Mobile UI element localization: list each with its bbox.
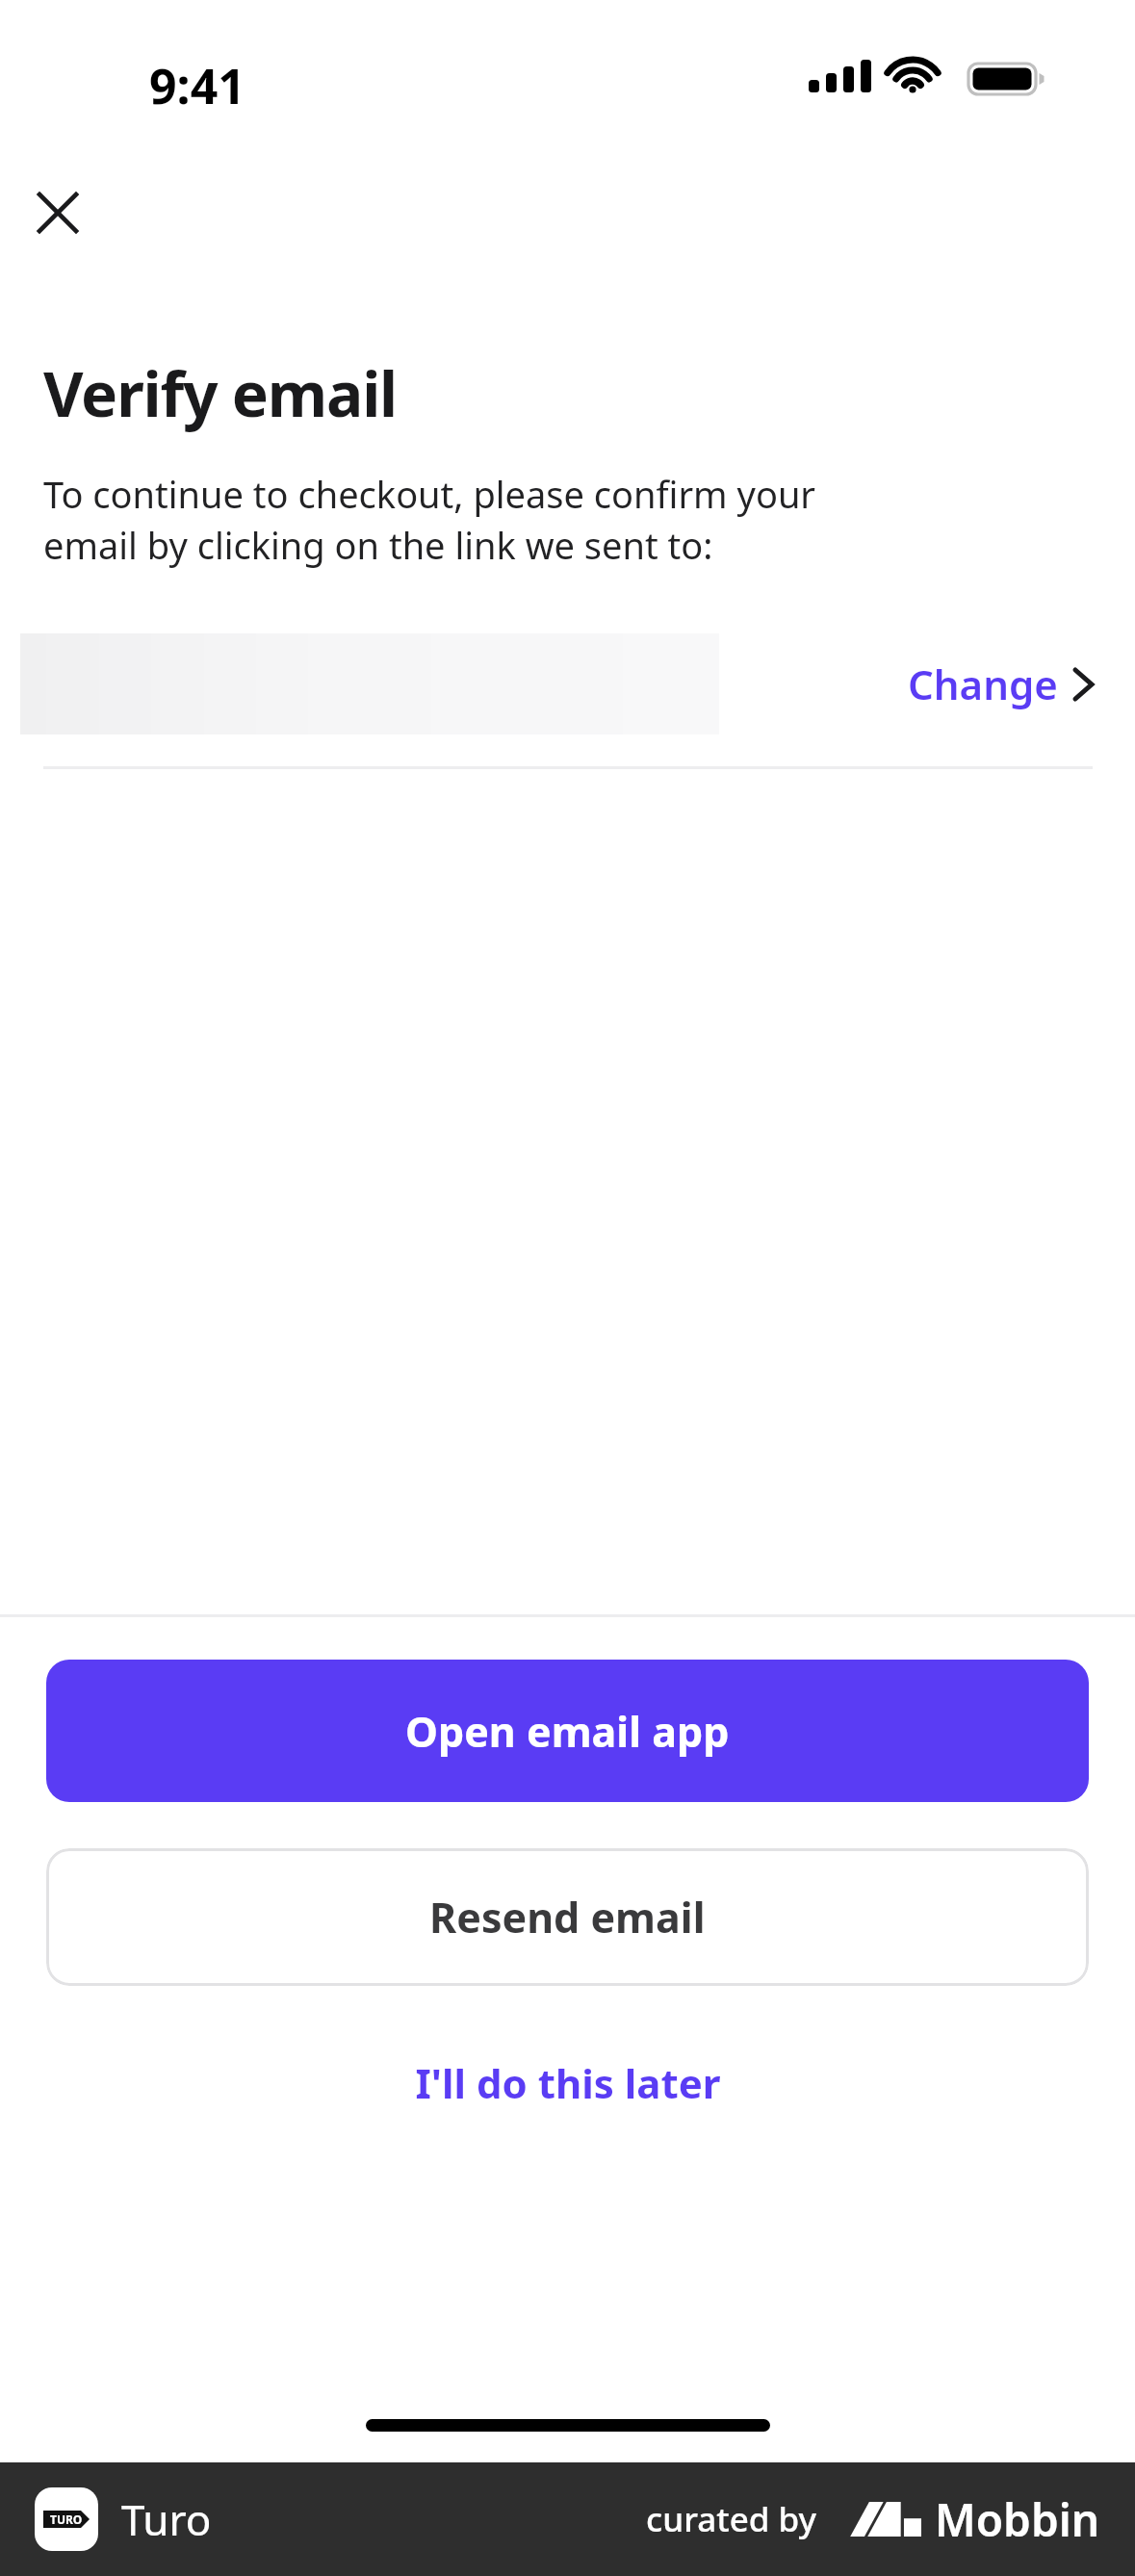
staticText: Open email app: [405, 1703, 730, 1760]
staticText: I'll do this later: [415, 2055, 721, 2110]
button[interactable]: Close: [13, 168, 102, 257]
staticText: To continue to checkout, please confirm …: [43, 469, 816, 570]
staticText: Resend email: [429, 1889, 706, 1945]
staticText: Verify email: [43, 351, 397, 435]
staticText: curated by: [646, 2496, 817, 2542]
staticText: 9:41: [149, 53, 245, 118]
button[interactable]: Open email app: [46, 1660, 1089, 1802]
button[interactable]: I'll do this later: [376, 2042, 760, 2124]
button[interactable]: Change: [889, 643, 1135, 725]
staticText: Turo: [121, 2490, 212, 2548]
button[interactable]: Resend email: [46, 1848, 1089, 1986]
staticText: TURO: [50, 2512, 83, 2527]
staticText: Change: [908, 657, 1058, 711]
staticText: Mobbin: [935, 2489, 1100, 2550]
